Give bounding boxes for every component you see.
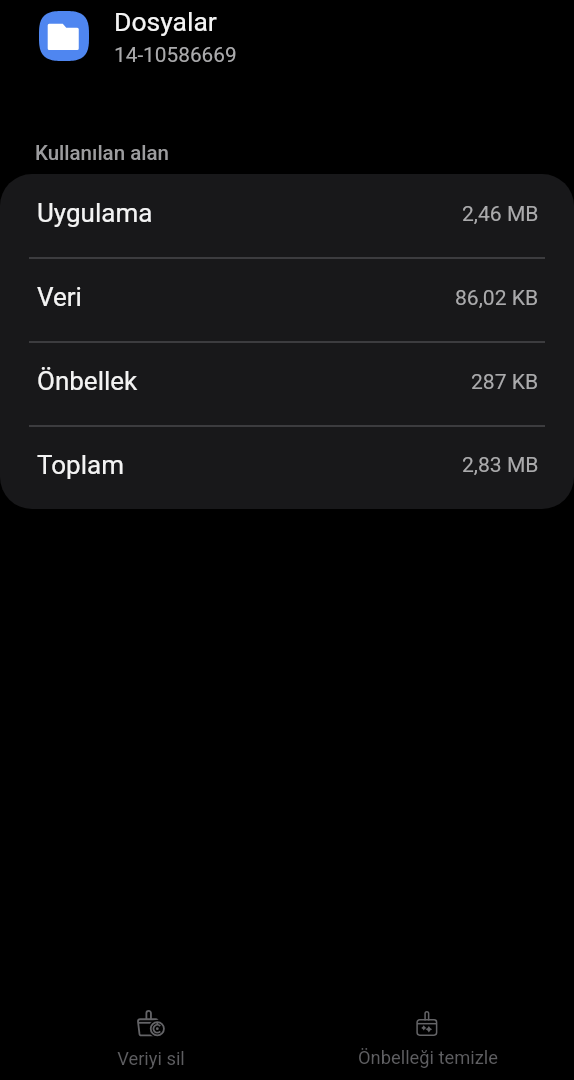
button[interactable]: Toplam <box>0 426 574 509</box>
button[interactable]: Uygulama <box>0 174 574 258</box>
staticText: Toplam <box>37 450 124 480</box>
button[interactable]: Önbellek <box>0 342 574 426</box>
staticText: Veri <box>37 282 82 312</box>
staticText: 2,46 MB <box>462 201 539 226</box>
staticText: 14-10586669 <box>114 43 237 67</box>
staticText: 287 KB <box>471 369 539 394</box>
button[interactable]: Veri <box>0 258 574 342</box>
staticText: Önbellek <box>37 366 138 396</box>
button[interactable]: Delete data <box>7 989 294 1079</box>
staticText: Önbelleği temizle <box>358 1047 498 1068</box>
staticText: Uygulama <box>37 198 153 228</box>
staticText: 86,02 KB <box>455 285 539 310</box>
staticText: 2,83 MB <box>462 452 539 477</box>
button[interactable]: Clear cache <box>284 990 571 1080</box>
staticText: Dosyalar <box>114 6 217 37</box>
staticText: Veriyi sil <box>117 1048 185 1069</box>
button[interactable]: Dosyalar <box>0 0 574 72</box>
staticText: Kullanılan alan <box>35 141 169 165</box>
